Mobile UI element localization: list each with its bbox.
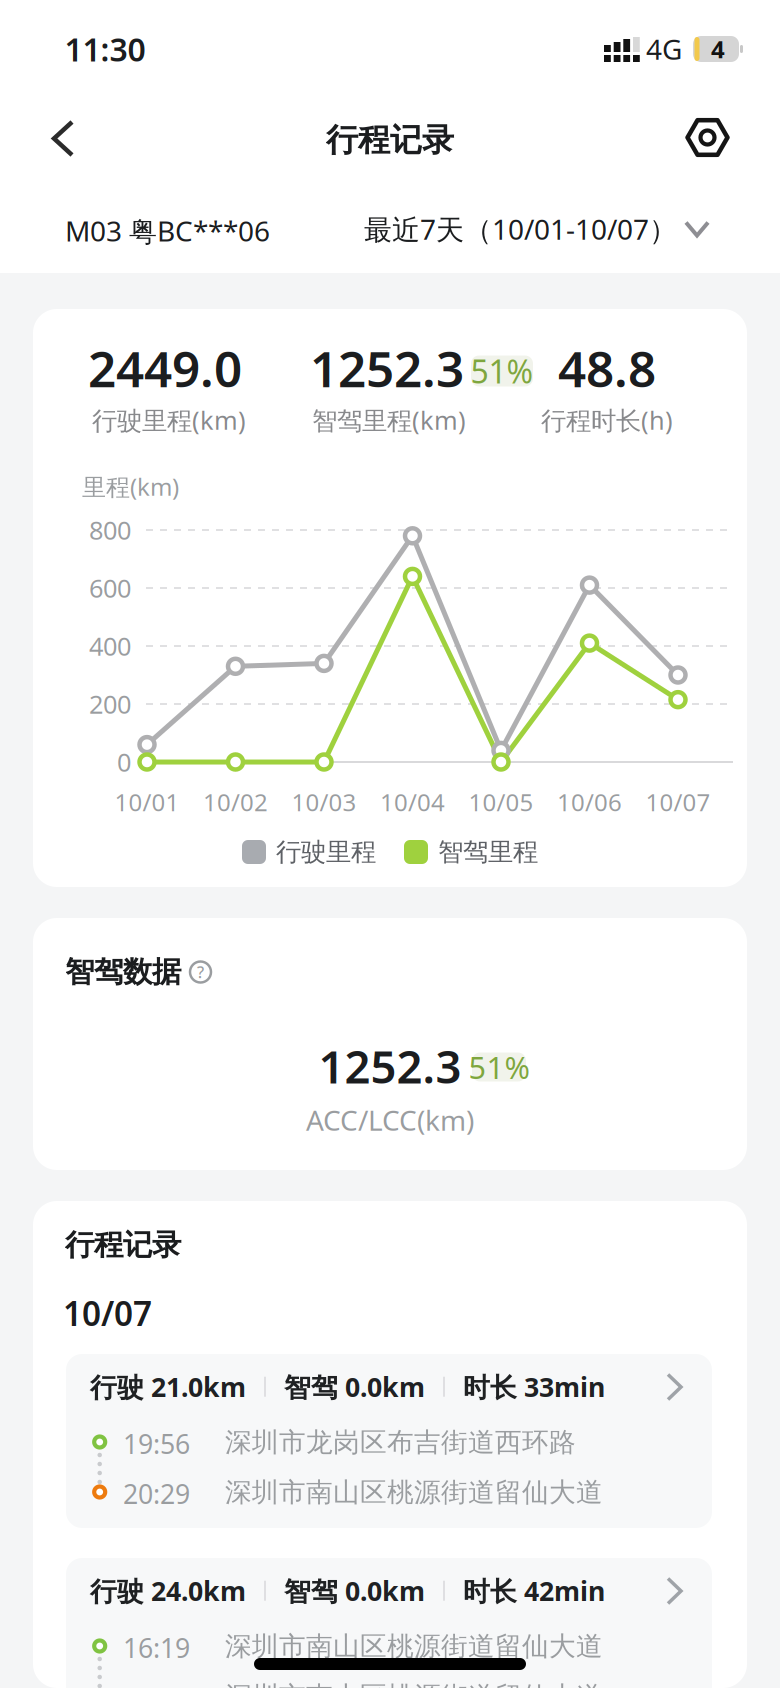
- staticText: 行程记录: [65, 1227, 181, 1263]
- staticText: ?: [197, 961, 204, 983]
- staticText: 20:29: [123, 1476, 190, 1511]
- staticText: 行驶里程: [276, 836, 376, 867]
- staticText: 600: [89, 571, 131, 605]
- staticText: 10/01: [114, 786, 179, 818]
- staticText: 48.8: [558, 335, 656, 401]
- staticText: 800: [89, 513, 131, 547]
- staticText: 4G: [646, 30, 682, 68]
- staticText: 时长 42min: [463, 1573, 605, 1608]
- staticText: 400: [89, 629, 131, 663]
- staticText: 51%: [468, 1047, 529, 1087]
- staticText: 10/07: [645, 786, 710, 818]
- button[interactable]: Back: [40, 108, 86, 169]
- staticText: 4: [711, 33, 725, 65]
- staticText: 10/07: [63, 1291, 152, 1335]
- staticText: 行驶 21.0km: [90, 1369, 246, 1404]
- staticText: 最近7天（10/01-10/07）: [364, 210, 677, 248]
- staticText: 智驾 0.0km: [284, 1369, 425, 1404]
- button[interactable]: 最近7天（10/01-10/07）: [308, 210, 708, 248]
- staticText: 51%: [470, 350, 533, 392]
- staticText: 19:56: [123, 1426, 190, 1461]
- button[interactable]: Help: [189, 960, 212, 983]
- staticText: 行驶里程(km): [92, 403, 246, 437]
- staticText: 0: [117, 745, 131, 779]
- staticText: 智驾数据: [65, 954, 181, 990]
- button[interactable]: 行驶 24.0km: [66, 1558, 712, 1688]
- staticText: 行驶 24.0km: [90, 1573, 246, 1608]
- staticText: 200: [89, 687, 131, 721]
- staticText: 2449.0: [88, 335, 242, 401]
- staticText: ACC/LCC(km): [306, 1101, 474, 1139]
- staticText: 深圳市龙岗区布吉街道西环路: [225, 1426, 576, 1459]
- button[interactable]: Settings: [680, 110, 734, 164]
- staticText: 时长 33min: [463, 1369, 605, 1404]
- button[interactable]: 行驶 21.0km: [66, 1354, 712, 1528]
- staticText: 深圳市南山区桃源街道留仙大道: [225, 1476, 603, 1509]
- staticText: M03 粤BC***06: [65, 212, 270, 249]
- staticText: 16:19: [123, 1630, 190, 1665]
- staticText: 10/03: [291, 786, 356, 818]
- staticText: 智驾里程(km): [312, 403, 466, 437]
- staticText: 1252.3: [318, 1036, 461, 1096]
- staticText: 10/04: [380, 786, 445, 818]
- staticText: 1252.3: [310, 335, 464, 401]
- staticText: 深圳市南山区桃源街道留仙大道: [225, 1680, 603, 1688]
- staticText: 智驾 0.0km: [284, 1573, 425, 1608]
- staticText: 10/05: [468, 786, 533, 818]
- staticText: 行程时长(h): [541, 403, 673, 437]
- staticText: 10/06: [557, 786, 622, 818]
- staticText: 11:30: [64, 28, 145, 70]
- staticText: 里程(km): [82, 471, 179, 502]
- staticText: 智驾里程: [438, 836, 538, 867]
- staticText: 行程记录: [326, 120, 454, 160]
- staticText: 10/02: [203, 786, 268, 818]
- staticText: 深圳市南山区桃源街道留仙大道: [225, 1630, 603, 1663]
- button[interactable]: M03 粤BC***06: [65, 212, 270, 249]
